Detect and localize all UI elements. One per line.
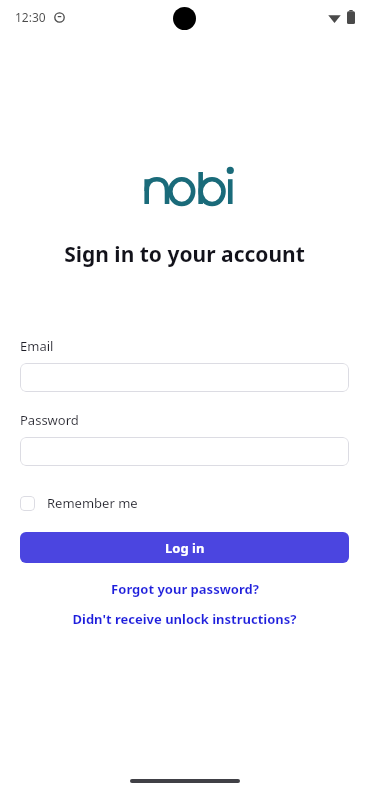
staticText: Password [20,411,79,429]
button[interactable]: Password input [20,437,349,466]
staticText: 12:30 [15,9,46,25]
staticText: Remember me [47,494,138,512]
staticText: Log in [165,539,205,557]
staticText: Didn't receive unlock instructions? [72,610,297,628]
other: nobi logo [142,168,228,208]
staticText: Sign in to your account [64,240,305,269]
button[interactable]: Forgot your password? [20,580,349,598]
staticText: Forgot your password? [111,580,259,598]
button[interactable]: Didn't receive unlock instructions? [20,610,349,628]
button[interactable]: Email input [20,363,349,392]
button[interactable]: Log in [20,532,349,563]
staticText: Email [20,337,54,355]
button[interactable]: Remember me [20,492,138,514]
